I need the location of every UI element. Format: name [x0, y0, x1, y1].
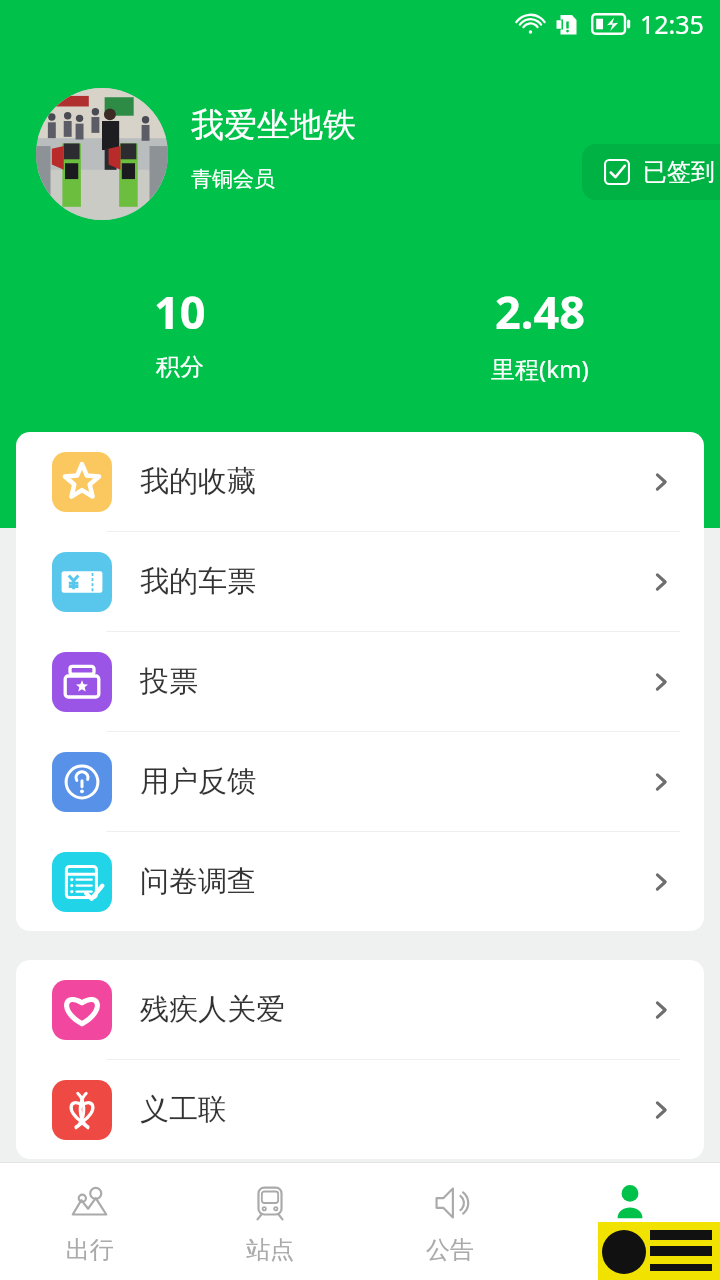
button[interactable]: 我 — [540, 1163, 720, 1280]
button[interactable]: 站点 — [180, 1163, 360, 1280]
staticText: 站点 — [246, 1235, 294, 1265]
staticText: 已签到 — [643, 157, 715, 187]
staticText: 义工联 — [140, 1091, 227, 1128]
staticText: 我的收藏 — [140, 463, 256, 500]
staticText: 2.48 — [495, 281, 585, 342]
button[interactable]: 用户反馈 — [16, 732, 704, 831]
button[interactable]: 2.48 — [360, 281, 720, 411]
button[interactable]: 我的收藏 — [16, 432, 704, 531]
staticText: 积分 — [156, 352, 204, 382]
staticText: 出行 — [66, 1235, 114, 1265]
staticText: 我 — [618, 1235, 642, 1265]
staticText: 残疾人关爱 — [140, 991, 285, 1028]
button[interactable]: 残疾人关爱 — [16, 960, 704, 1059]
staticText: 问卷调查 — [140, 863, 256, 900]
staticText: 用户反馈 — [140, 763, 256, 800]
staticText: 投票 — [140, 663, 198, 700]
staticText: 青铜会员 — [191, 166, 275, 192]
staticText: 我的车票 — [140, 563, 256, 600]
staticText: 10 — [154, 281, 206, 342]
button[interactable]: 我的车票 — [16, 532, 704, 631]
button[interactable]: 已签到 — [582, 144, 720, 200]
button[interactable]: 公告 — [360, 1163, 540, 1280]
button[interactable]: 义工联 — [16, 1060, 704, 1159]
staticText: 我爱坐地铁 — [191, 104, 356, 146]
button[interactable]: 用户头像 — [36, 88, 168, 220]
staticText: 12:35 — [640, 7, 704, 41]
button[interactable]: 10 — [0, 281, 360, 411]
staticText: 公告 — [426, 1235, 474, 1265]
button[interactable]: 出行 — [0, 1163, 180, 1280]
button[interactable]: 问卷调查 — [16, 832, 704, 931]
button[interactable]: 投票 — [16, 632, 704, 731]
staticText: 里程(km) — [491, 352, 589, 385]
